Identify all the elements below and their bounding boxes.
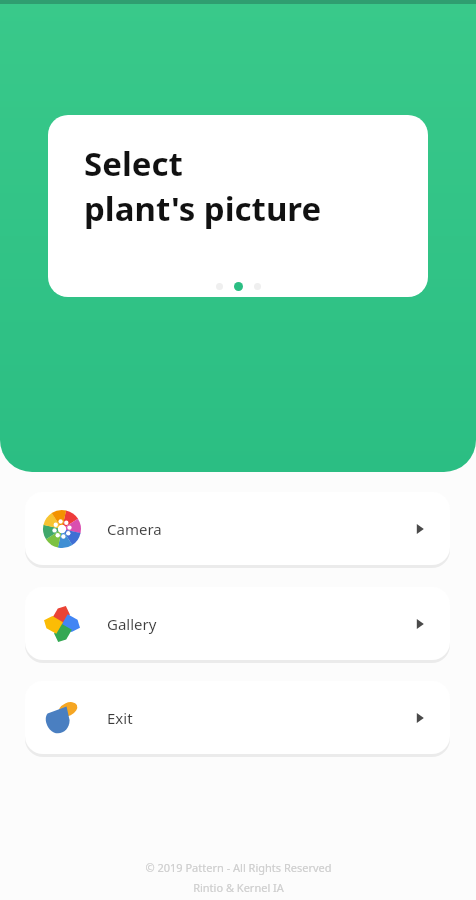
button[interactable]: Camera (25, 492, 450, 565)
staticText: Select (84, 141, 183, 186)
staticText: © 2019 Pattern - All Rights Reserved (145, 860, 332, 875)
staticText: Rintio & Kernel IA (193, 880, 284, 895)
other: Gallery (43, 605, 81, 643)
other: Exit (43, 699, 81, 737)
other: Camera (43, 510, 81, 548)
button[interactable]: Gallery (25, 587, 450, 660)
staticText: plant's picture (84, 186, 322, 231)
staticText: Gallery (107, 614, 157, 634)
staticText: Camera (107, 519, 162, 539)
button[interactable]: Select (48, 115, 428, 297)
staticText: Exit (107, 708, 133, 728)
button[interactable]: Exit (25, 681, 450, 754)
